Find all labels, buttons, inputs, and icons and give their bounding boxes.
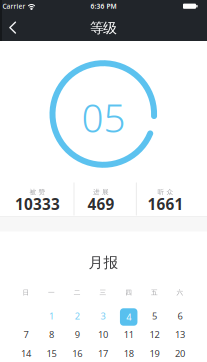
button[interactable]: 10 [94, 326, 112, 343]
staticText: 19 [149, 347, 159, 360]
button[interactable]: 16 [68, 345, 86, 362]
staticText: 二 [74, 288, 81, 297]
button[interactable]: 7 [17, 326, 35, 343]
staticText: 12 [149, 328, 159, 341]
button[interactable]: 18 [120, 345, 138, 362]
button[interactable]: 15 [43, 345, 61, 362]
staticText: 五 [151, 288, 158, 297]
staticText: 六 [177, 288, 184, 297]
staticText: 四 [125, 288, 132, 297]
button[interactable]: 9 [68, 326, 86, 343]
staticText: 20 [175, 347, 185, 360]
staticText: 15 [47, 347, 57, 360]
staticText: 等级 [90, 19, 117, 37]
button[interactable]: 11 [120, 326, 138, 343]
button[interactable]: 8 [43, 326, 61, 343]
staticText: 18 [124, 347, 134, 360]
staticText: 16 [72, 347, 82, 360]
button[interactable]: 17 [94, 345, 112, 362]
staticText: Carrier [2, 2, 25, 11]
staticText: 3 [100, 310, 105, 322]
button[interactable]: Back [0, 0, 207, 362]
staticText: 听 众 [157, 188, 173, 196]
staticText: 被 赞 [29, 188, 45, 196]
button[interactable]: 2 [68, 307, 86, 324]
staticText: 17 [98, 347, 108, 360]
button[interactable]: 13 [171, 326, 189, 343]
staticText: 一 [48, 288, 55, 297]
staticText: 1661 [147, 194, 183, 214]
staticText: 8 [49, 328, 54, 341]
staticText: 三 [99, 288, 106, 297]
staticText: 2 [75, 310, 80, 322]
button[interactable]: 19 [145, 345, 163, 362]
staticText: 1 [49, 310, 54, 322]
staticText: 13 [175, 328, 185, 341]
staticText: 进 展 [93, 188, 109, 196]
staticText: 4 [126, 311, 131, 323]
staticText: 7 [23, 328, 28, 341]
button[interactable]: 14 [17, 345, 35, 362]
button[interactable]: 1 [43, 307, 61, 324]
button[interactable]: 20 [171, 345, 189, 362]
staticText: 14 [21, 347, 31, 360]
staticText: 月报 [88, 253, 118, 271]
staticText: 6 [178, 310, 183, 322]
staticText: 10333 [15, 194, 60, 214]
button[interactable]: 5 [145, 307, 163, 324]
staticText: 6:36 PM [90, 2, 116, 11]
button[interactable]: 12 [145, 326, 163, 343]
staticText: 日 [22, 288, 29, 297]
button[interactable]: 6 [171, 307, 189, 324]
staticText: 5 [152, 310, 157, 322]
staticText: 469 [87, 194, 114, 214]
button[interactable]: 4 [120, 308, 137, 326]
staticText: 11 [124, 328, 134, 341]
staticText: 10 [98, 328, 108, 341]
staticText: 9 [75, 328, 80, 341]
button[interactable]: 3 [94, 307, 112, 324]
staticText: 05 [81, 91, 125, 144]
